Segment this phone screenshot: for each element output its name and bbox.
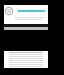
button[interactable] xyxy=(7,57,46,59)
button[interactable] xyxy=(7,51,46,53)
button[interactable] xyxy=(7,53,46,55)
button[interactable] xyxy=(7,55,46,57)
button[interactable] xyxy=(7,59,46,61)
button[interactable]: Document page xyxy=(4,5,48,68)
button[interactable] xyxy=(7,63,46,65)
button[interactable] xyxy=(7,65,46,67)
button[interactable] xyxy=(7,61,46,63)
